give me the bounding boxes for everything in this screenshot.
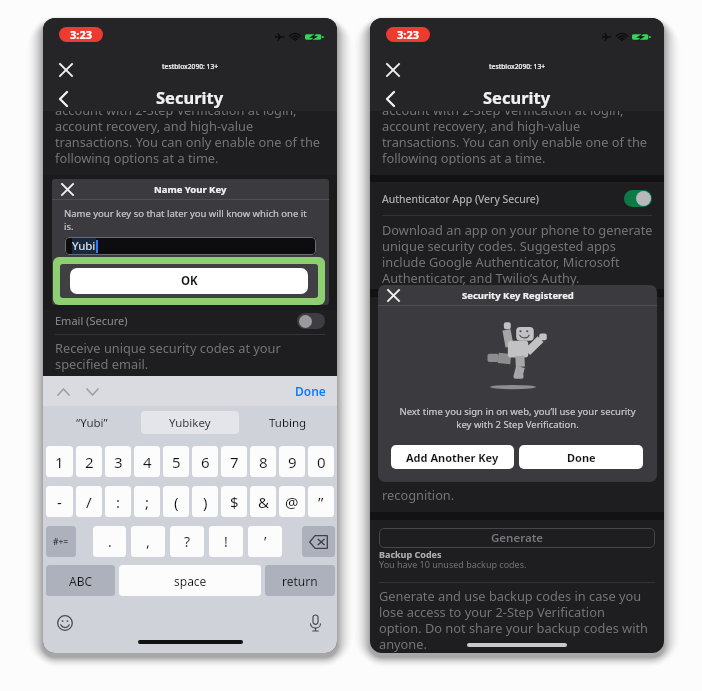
staticText: 8 — [259, 452, 268, 472]
staticText: testblox2090: 13+ — [162, 62, 219, 71]
staticText: account with 2-Step Verification at logi… — [55, 111, 321, 165]
staticText: 0 — [317, 452, 326, 472]
staticText: account with 2-Step Verification at logi… — [382, 111, 648, 165]
button[interactable]: 2 — [76, 446, 102, 477]
button[interactable]: Generate — [379, 528, 655, 548]
staticText: Backup Codes — [379, 548, 442, 560]
button[interactable]: “Yubi” — [43, 406, 141, 439]
button[interactable]: Yubi — [65, 237, 316, 255]
button[interactable]: Previous field — [55, 383, 72, 400]
staticText: Done — [567, 450, 596, 465]
staticText: Next time you sign in on web, you’ll use… — [392, 405, 643, 431]
button[interactable]: Dictation — [304, 612, 326, 634]
button[interactable]: ; — [134, 486, 160, 517]
staticText: ( — [174, 492, 179, 512]
button[interactable]: Close — [54, 58, 78, 82]
button[interactable]: 5 — [163, 446, 189, 477]
button[interactable]: Emoji — [54, 612, 76, 634]
button[interactable]: 6 — [192, 446, 218, 477]
button[interactable]: 8 — [250, 446, 276, 477]
button[interactable]: 4 — [134, 446, 160, 477]
staticText: Authenticator App (Very Secure) — [382, 192, 539, 206]
button[interactable]: Done — [519, 445, 643, 469]
button[interactable]: 0 — [308, 446, 334, 477]
button[interactable]: / — [76, 486, 102, 517]
staticText: 6 — [201, 452, 210, 472]
staticText: 2 — [85, 452, 94, 472]
button[interactable]: Close — [381, 58, 405, 82]
staticText: Yubikey — [169, 415, 211, 431]
staticText: recognition. — [382, 486, 455, 503]
button[interactable]: . — [93, 526, 126, 557]
staticText: 4 — [143, 452, 152, 472]
button[interactable]: 9 — [279, 446, 305, 477]
staticText: space — [174, 573, 207, 589]
button[interactable]: ’ — [248, 526, 282, 557]
staticText: 3:23 — [70, 27, 92, 42]
button[interactable]: Back — [51, 87, 75, 111]
button[interactable]: Yubikey — [141, 411, 239, 434]
staticText: ; — [145, 492, 150, 512]
button[interactable]: ? — [170, 526, 204, 557]
button[interactable]: 1 — [46, 446, 73, 477]
staticText: - — [57, 492, 62, 512]
staticText: Download an app on your phone to generat… — [382, 221, 653, 286]
staticText: Name your key so that later you will kno… — [64, 207, 307, 232]
staticText: 3:23 — [397, 27, 419, 42]
staticText: 5 — [172, 452, 181, 472]
button[interactable]: ” — [308, 486, 334, 517]
staticText: “Yubi” — [76, 415, 108, 431]
button[interactable]: ! — [209, 526, 243, 557]
staticText: . — [108, 532, 112, 551]
staticText: 3 — [114, 452, 123, 472]
button[interactable]: Done — [295, 383, 326, 399]
button[interactable]: return — [265, 565, 335, 596]
staticText: ! — [224, 532, 228, 551]
staticText: return — [282, 573, 318, 589]
button[interactable]: Authenticator toggle — [624, 190, 652, 207]
button[interactable]: Close dialog — [58, 180, 76, 198]
staticText: Security — [483, 86, 551, 108]
staticText: 7 — [230, 452, 239, 472]
staticText: Done — [295, 383, 326, 399]
staticText: Generate and use backup codes in case yo… — [379, 587, 648, 652]
button[interactable]: Close dialog — [384, 286, 402, 304]
staticText: ABC — [69, 573, 93, 589]
staticText: Security — [156, 86, 224, 108]
staticText: testblox2090: 13+ — [489, 62, 546, 71]
button[interactable]: Tubing — [239, 406, 337, 439]
button[interactable]: 7 — [221, 446, 247, 477]
staticText: 1 — [55, 452, 64, 472]
button[interactable]: & — [250, 486, 276, 517]
staticText: Email (Secure) — [55, 313, 128, 328]
button[interactable]: OK — [60, 264, 318, 298]
staticText: ” — [318, 492, 324, 512]
button[interactable]: : — [105, 486, 131, 517]
button[interactable]: - — [46, 486, 73, 517]
button[interactable]: space — [119, 565, 261, 596]
staticText: Add Another Key — [406, 450, 499, 465]
button[interactable]: #+= — [46, 526, 76, 557]
button[interactable]: Email toggle — [297, 313, 325, 329]
button[interactable]: Next field — [84, 383, 101, 400]
button[interactable]: Delete — [302, 526, 335, 557]
button[interactable]: 3 — [105, 446, 131, 477]
button[interactable]: , — [131, 526, 165, 557]
button[interactable]: @ — [279, 486, 305, 517]
staticText: Name Your Key — [154, 183, 227, 196]
button[interactable]: Add Another Key — [391, 445, 514, 469]
button[interactable]: $ — [221, 486, 247, 517]
staticText: @ — [285, 492, 299, 512]
button[interactable]: ) — [192, 486, 218, 517]
staticText: ? — [184, 532, 191, 551]
staticText: ) — [203, 492, 208, 512]
staticText: Yubi — [72, 238, 96, 254]
button[interactable]: ABC — [46, 565, 115, 596]
staticText: OK — [181, 273, 198, 289]
button[interactable]: Back — [378, 87, 402, 111]
staticText: ’ — [264, 532, 267, 551]
staticText: : — [116, 492, 121, 512]
button[interactable]: ( — [163, 486, 189, 517]
staticText: #+= — [53, 536, 69, 548]
staticText: Receive unique security codes at your sp… — [55, 339, 281, 372]
